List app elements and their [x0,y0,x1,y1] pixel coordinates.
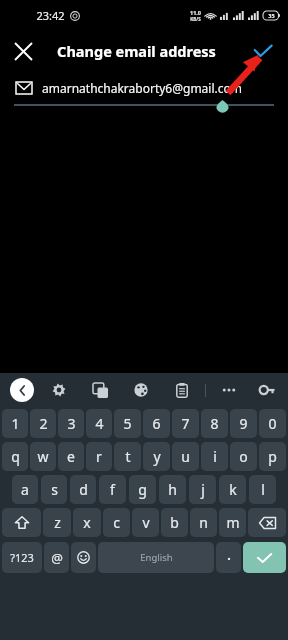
staticText: 2 [39,414,48,433]
staticText: e [67,447,75,466]
staticText: 23:42 [36,8,65,23]
staticText: i [213,447,217,466]
button[interactable]: amarnathchakraborty6@gmail.com [16,72,288,104]
button[interactable]: i [201,442,228,471]
button[interactable]: q [2,442,28,471]
button[interactable]: m [219,508,246,537]
staticText: 35 [268,12,275,19]
button[interactable]: Themes [130,379,152,401]
button[interactable]: g [129,475,156,504]
staticText: KB/S [190,16,201,22]
staticText: w [37,447,49,466]
staticText: g [138,480,147,499]
button[interactable]: Confirm [246,34,280,68]
staticText: 5 [123,414,132,433]
staticText: l [261,480,265,499]
button[interactable]: 6 [143,409,170,438]
staticText: v [142,513,150,532]
button[interactable]: k [219,475,246,504]
staticText: k [229,480,237,499]
button[interactable]: c [103,508,130,537]
button[interactable]: Translate [89,379,111,401]
button[interactable]: r [86,442,112,471]
staticText: 8 [210,414,219,433]
staticText: @ [51,549,63,567]
button[interactable]: ?123 [2,542,42,573]
staticText: c [113,513,120,532]
button[interactable]: f [99,475,126,504]
button[interactable]: v [132,508,159,537]
button[interactable]: 5 [114,409,141,438]
button[interactable]: 0 [259,409,286,438]
staticText: 9 [239,414,248,433]
staticText: o [239,447,248,466]
staticText: 4 [95,414,104,433]
button[interactable]: Enter [243,542,286,573]
button[interactable]: y [143,442,170,471]
staticText: r [96,447,102,466]
button[interactable]: a [12,475,38,504]
button[interactable]: n [190,508,217,537]
button[interactable]: 4 [86,409,112,438]
button[interactable]: l [249,475,276,504]
staticText: z [54,513,61,532]
button[interactable]: Period [216,542,241,573]
staticText: 7 [181,414,190,433]
staticText: d [79,480,88,499]
staticText: m [226,513,240,532]
button[interactable]: z [43,508,71,537]
staticText: 11.0 [190,9,201,16]
staticText: 3 [67,414,76,433]
button[interactable]: Password [256,379,278,401]
button[interactable]: Shift [2,508,41,537]
button[interactable]: h [159,475,186,504]
button[interactable]: p [259,442,286,471]
button[interactable]: t [114,442,141,471]
button[interactable]: d [70,475,96,504]
button[interactable]: s [41,475,67,504]
button[interactable]: w [30,442,56,471]
staticText: b [170,513,179,532]
button[interactable]: b [161,508,188,537]
staticText: y [153,447,161,466]
staticText: p [268,447,277,466]
staticText: a [21,480,29,499]
staticText: English [140,551,173,564]
button[interactable]: Settings [48,379,70,401]
button[interactable]: 9 [230,409,257,438]
staticText: f [110,480,115,499]
staticText: u [181,447,190,466]
button[interactable]: 1 [2,409,28,438]
staticText: 1 [11,414,20,433]
button[interactable]: 2 [30,409,56,438]
button[interactable]: More options [218,379,240,401]
button[interactable]: e [58,442,84,471]
button[interactable]: Back [10,378,34,402]
button[interactable]: Clipboard [171,379,193,401]
staticText: 6 [152,414,161,433]
staticText: h [168,480,177,499]
button[interactable]: 8 [201,409,228,438]
staticText: q [11,447,20,466]
staticText: amarnathchakraborty6@gmail.com [42,80,242,96]
button[interactable]: Emoji [71,542,96,573]
staticText: ?123 [10,550,34,565]
staticText: 0 [268,414,277,433]
button[interactable]: x [73,508,101,537]
button[interactable]: @ [44,542,69,573]
staticText: x [83,513,91,532]
staticText: Change email address [57,41,216,61]
button[interactable]: o [230,442,257,471]
button[interactable]: 3 [58,409,84,438]
button[interactable]: English [98,542,214,573]
staticText: j [201,480,205,499]
button[interactable]: j [189,475,216,504]
staticText: t [125,447,131,466]
button[interactable]: Backspace [248,508,286,537]
button[interactable]: u [172,442,199,471]
button[interactable]: 7 [172,409,199,438]
staticText: n [199,513,208,532]
button[interactable]: Close [6,34,40,68]
staticText: s [51,480,58,499]
